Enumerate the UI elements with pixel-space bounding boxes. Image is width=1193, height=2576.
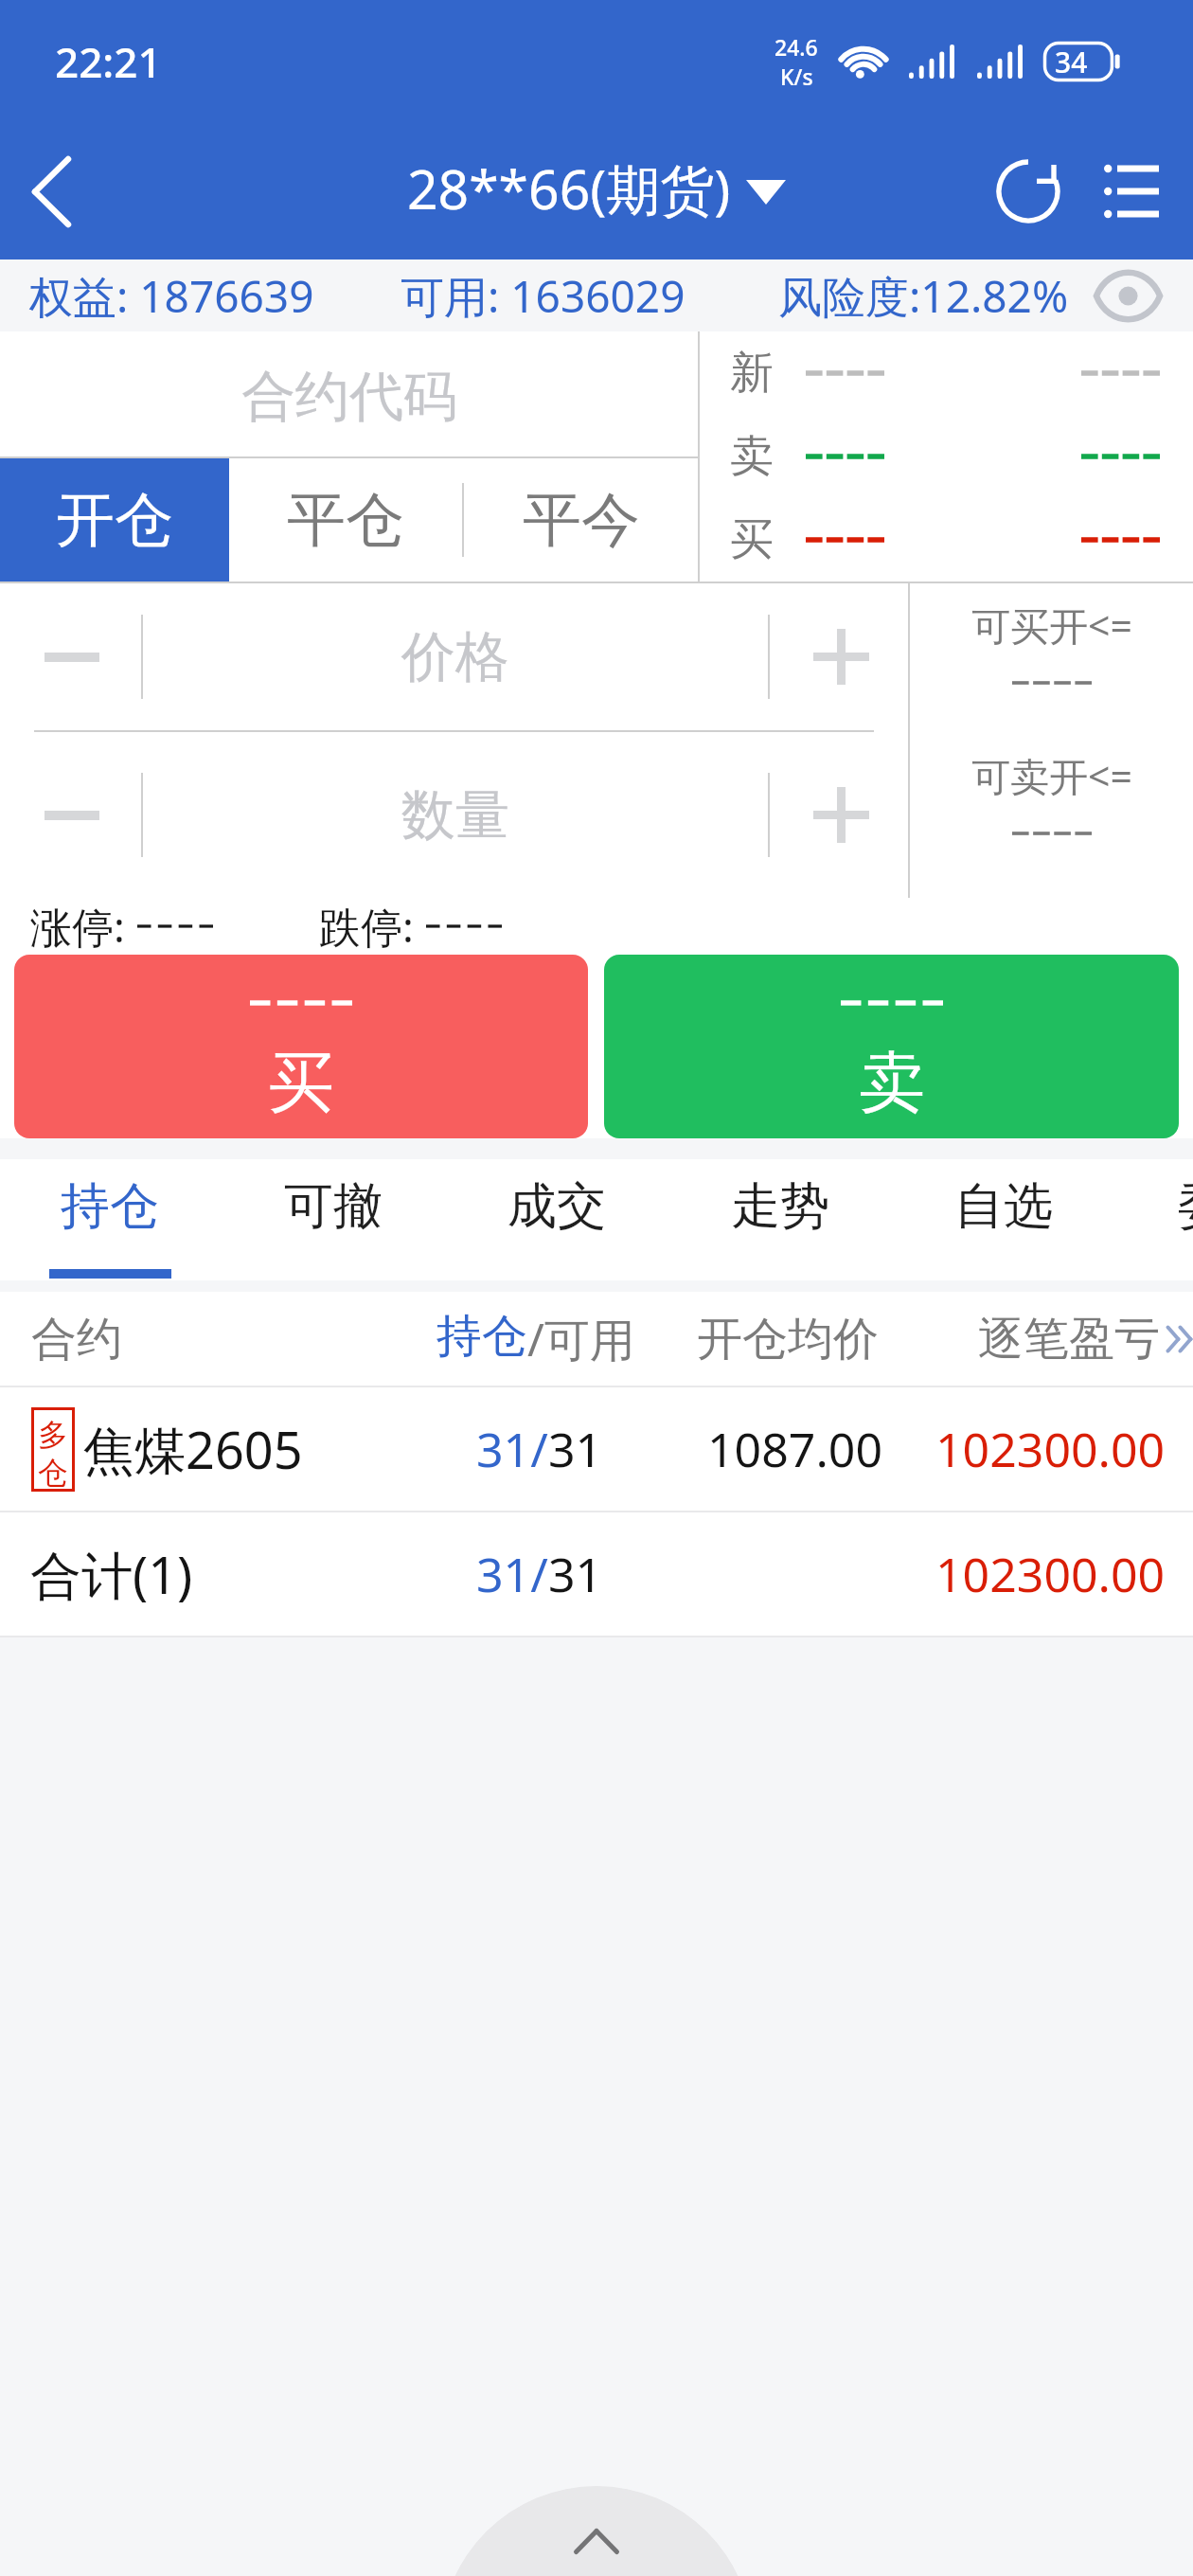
staticText: 合约代码 <box>241 363 457 431</box>
staticText: 可用: 1636029 <box>401 266 686 326</box>
button[interactable]: 开仓 <box>0 458 229 581</box>
staticText: 跌停: <box>319 898 414 955</box>
button[interactable]: 委托 <box>1115 1159 1193 1271</box>
button[interactable]: Back <box>0 134 104 248</box>
staticText: 风险度:12.82% <box>778 266 1069 326</box>
staticText: 委托 <box>1178 1175 1193 1238</box>
staticText: 新 <box>730 346 774 401</box>
button[interactable]: Increase 数量 <box>770 732 908 898</box>
button[interactable]: 成交 <box>445 1159 668 1271</box>
button[interactable]: More columns <box>1164 1292 1193 1386</box>
staticText: 31/ <box>476 1417 548 1481</box>
staticText: 逐笔盈亏 <box>978 1311 1160 1368</box>
staticText: 持仓 <box>436 1308 527 1365</box>
staticText: 24.6 <box>775 32 818 62</box>
staticText: 可买开<= <box>971 599 1132 652</box>
staticText: 102300.00 <box>935 1417 1166 1481</box>
staticText: 成交 <box>507 1175 606 1238</box>
staticText: 合计(1) <box>30 1539 193 1609</box>
button[interactable]: 多 <box>0 1387 1193 1511</box>
button[interactable]: Toggle amounts visibility <box>1084 259 1171 331</box>
button[interactable]: 合计(1) <box>0 1512 1193 1636</box>
staticText: /可用 <box>527 1308 635 1370</box>
staticText: 平仓 <box>287 483 404 557</box>
button[interactable]: 买 <box>14 955 588 1138</box>
staticText: 仓 <box>38 1454 68 1492</box>
button[interactable]: 28**66(期货) <box>407 152 786 225</box>
staticText: 买 <box>730 512 774 567</box>
staticText: 价格 <box>401 623 509 691</box>
button[interactable]: Increase 价格 <box>770 583 908 730</box>
button[interactable]: Scroll to top <box>440 2486 753 2576</box>
staticText: 买 <box>268 1042 334 1125</box>
staticText: K/s <box>780 62 813 91</box>
staticText: 涨停: <box>30 898 125 955</box>
button[interactable]: 持仓 <box>0 1159 222 1271</box>
staticText: 自选 <box>954 1175 1053 1238</box>
staticText: 31/ <box>476 1542 548 1606</box>
staticText: 权益: 1876639 <box>29 266 314 326</box>
button[interactable]: 走势 <box>668 1159 892 1271</box>
staticText: 开仓 <box>56 483 173 557</box>
staticText: 合约 <box>31 1311 122 1368</box>
staticText: 可撤 <box>284 1175 383 1238</box>
button[interactable]: 平今 <box>464 458 698 581</box>
button[interactable]: 可撤 <box>222 1159 445 1271</box>
staticText: 34 <box>1055 43 1088 81</box>
button[interactable]: 合约代码 <box>0 331 698 456</box>
button[interactable]: Menu <box>1089 134 1184 248</box>
button[interactable]: 价格 <box>143 583 768 730</box>
button[interactable]: 自选 <box>892 1159 1115 1271</box>
staticText: 102300.00 <box>935 1542 1166 1606</box>
button[interactable]: 数量 <box>143 732 768 898</box>
staticText: 多 <box>38 1416 68 1454</box>
button[interactable]: Decrease 数量 <box>0 732 141 898</box>
staticText: 可卖开<= <box>971 749 1132 802</box>
button[interactable]: 持仓 <box>436 1308 635 1370</box>
staticText: 22:21 <box>55 33 162 90</box>
staticText: 开仓均价 <box>697 1311 879 1368</box>
staticText: 卖 <box>730 429 774 484</box>
staticText: 走势 <box>731 1175 829 1238</box>
staticText: 31 <box>548 1542 603 1606</box>
button[interactable]: Refresh <box>971 134 1085 248</box>
button[interactable]: Decrease 价格 <box>0 583 141 730</box>
staticText: 平今 <box>523 483 640 557</box>
staticText: 1087.00 <box>707 1417 882 1481</box>
staticText: 持仓 <box>61 1175 159 1238</box>
staticText: 28**66(期货) <box>407 152 731 225</box>
button[interactable]: 卖 <box>604 955 1179 1138</box>
button[interactable]: 平仓 <box>229 458 462 581</box>
staticText: 数量 <box>401 781 509 850</box>
staticText: 31 <box>548 1417 603 1481</box>
staticText: 卖 <box>859 1042 925 1125</box>
staticText: 焦煤2605 <box>83 1414 303 1484</box>
